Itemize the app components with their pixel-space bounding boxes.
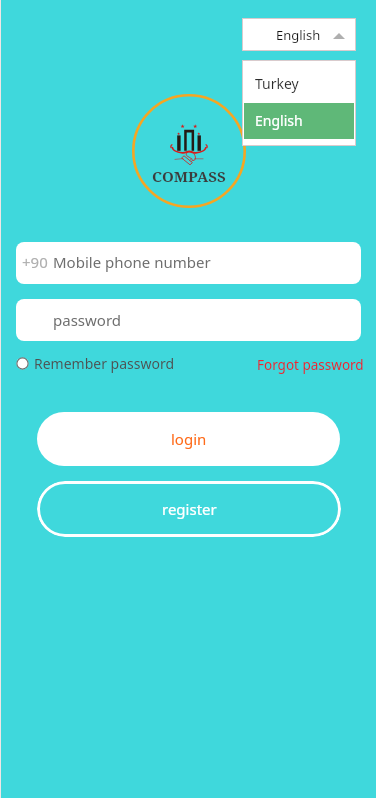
staticText: Forgot password	[257, 356, 364, 374]
button[interactable]: +90	[16, 242, 361, 284]
button[interactable]: password	[16, 299, 361, 341]
staticText: English	[255, 111, 303, 130]
button[interactable]: English	[244, 103, 354, 139]
staticText: +90	[22, 252, 48, 272]
other: Collapse language list	[333, 33, 345, 39]
staticText: password	[53, 310, 121, 330]
button[interactable]: register	[37, 481, 341, 537]
staticText: Remember password	[34, 354, 175, 373]
staticText: login	[171, 429, 207, 449]
staticText: English	[276, 26, 321, 44]
button[interactable]: English	[243, 19, 355, 50]
staticText: Mobile phone number	[53, 252, 211, 272]
staticText: register	[162, 499, 217, 519]
staticText: COMPASS	[152, 166, 226, 186]
button[interactable]: Forgot password	[253, 353, 368, 377]
staticText: Turkey	[255, 74, 299, 93]
button[interactable]: login	[37, 412, 340, 466]
button[interactable]: Remember password	[16, 351, 175, 375]
button[interactable]: Turkey	[243, 61, 355, 103]
